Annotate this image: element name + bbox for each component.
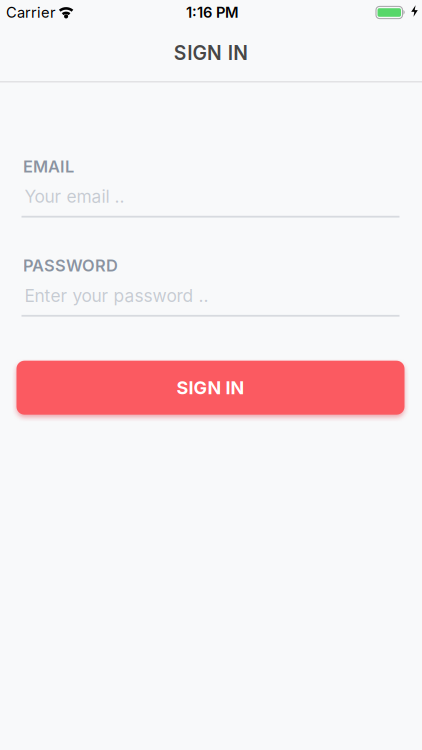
staticText: 1:16 PM: [186, 4, 239, 21]
staticText: Carrier: [6, 4, 56, 21]
staticText: Your email ..: [24, 186, 124, 207]
button[interactable]: SIGN IN: [16, 361, 404, 415]
button[interactable]: Your email ..: [21, 176, 399, 217]
staticText: SIGN IN: [174, 41, 248, 65]
staticText: Enter your password ..: [24, 285, 208, 306]
staticText: SIGN IN: [176, 377, 244, 399]
staticText: PASSWORD: [23, 256, 118, 275]
staticText: EMAIL: [23, 156, 74, 176]
button[interactable]: Enter your password ..: [21, 275, 399, 317]
